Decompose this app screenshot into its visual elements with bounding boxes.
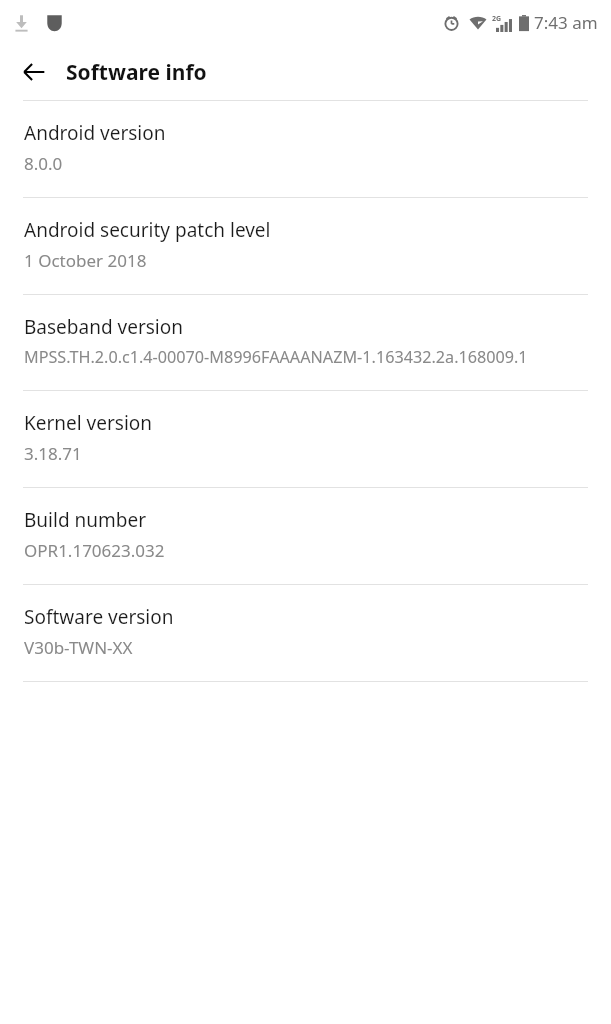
staticText: Software info bbox=[66, 58, 207, 87]
staticText: 8.0.0 bbox=[24, 152, 63, 175]
button[interactable]: Android version bbox=[0, 101, 611, 197]
staticText: Build number bbox=[24, 507, 147, 533]
button[interactable]: Baseband version bbox=[0, 295, 611, 390]
staticText: Android security patch level bbox=[24, 217, 271, 243]
staticText: Software version bbox=[24, 604, 174, 630]
staticText: V30b-TWN-XX bbox=[24, 636, 133, 659]
button[interactable]: Back bbox=[14, 52, 54, 92]
button[interactable]: Software version bbox=[0, 585, 611, 681]
staticText: Kernel version bbox=[24, 410, 153, 436]
staticText: Android version bbox=[24, 120, 166, 146]
button[interactable]: Android security patch level bbox=[0, 198, 611, 294]
staticText: 1 October 2018 bbox=[24, 249, 147, 272]
button[interactable]: Kernel version bbox=[0, 391, 611, 487]
staticText: 7:43 am bbox=[534, 11, 598, 34]
staticText: 2G bbox=[492, 14, 502, 24]
staticText: OPR1.170623.032 bbox=[24, 539, 165, 562]
staticText: Baseband version bbox=[24, 314, 183, 340]
staticText: MPSS.TH.2.0.c1.4-00070-M8996FAAAANAZM-1.… bbox=[24, 346, 528, 368]
staticText: 3.18.71 bbox=[24, 442, 82, 465]
button[interactable]: Build number bbox=[0, 488, 611, 584]
